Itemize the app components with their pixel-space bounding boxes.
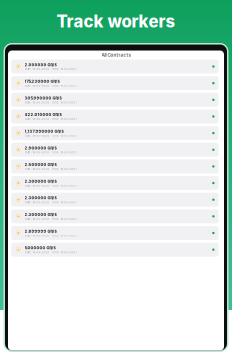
staticText: Track workers	[56, 11, 175, 32]
staticText: Start: 18-05-2020 End: 19-05-2021	[25, 201, 77, 204]
button[interactable]: 422.010000 Gh/s	[11, 109, 219, 123]
staticText: 2.900000 Gh/s	[25, 145, 57, 150]
staticText: Start: 18-05-2020 End: 19-05-2021	[25, 101, 77, 104]
staticText: Start: 18-05-2020 End: 19-05-2021	[25, 251, 77, 254]
staticText: Start: 18-05-2020 End: 19-05-2021	[25, 117, 77, 121]
staticText: 305.990000 Gh/s	[25, 96, 62, 100]
staticText: 5.000000 Gh/s	[25, 245, 56, 250]
staticText: Start: 18-05-2020 End: 19-05-2021	[25, 217, 77, 221]
staticText: 2.999999 Gh/s	[25, 62, 57, 67]
staticText: Start: 18-05-2020 End: 19-05-2021	[25, 184, 77, 187]
staticText: Start: 18-05-2020 End: 19-05-2021	[25, 84, 77, 87]
staticText: 2.300000 Gh/s	[25, 212, 57, 217]
staticText: All Contracts	[101, 52, 130, 58]
button[interactable]: 2.300000 Gh/s	[11, 209, 219, 223]
button[interactable]: 2.500000 Gh/s	[11, 159, 219, 173]
button[interactable]: 305.990000 Gh/s	[11, 93, 219, 107]
button[interactable]: 2.899999 Gh/s	[11, 226, 219, 240]
button[interactable]: 175.230000 Gh/s	[11, 76, 219, 90]
staticText: 2.300000 Gh/s	[25, 195, 57, 200]
staticText: 2.500000 Gh/s	[25, 162, 57, 167]
button[interactable]: 2.900000 Gh/s	[11, 143, 219, 157]
button[interactable]: 2.300000 Gh/s	[11, 176, 219, 190]
staticText: 1,137.990000 Gh/s	[25, 129, 64, 134]
staticText: Start: 18-05-2020 End: 19-05-2021	[25, 134, 77, 137]
staticText: 175.230000 Gh/s	[25, 79, 60, 84]
button[interactable]: 2.999999 Gh/s	[11, 59, 219, 73]
staticText: Start: 18-05-2020 End: 19-05-2021	[25, 67, 77, 71]
button[interactable]: 1,137.990000 Gh/s	[11, 126, 219, 140]
staticText: 422.010000 Gh/s	[25, 112, 62, 117]
staticText: Start: 18-05-2020 End: 19-05-2021	[25, 234, 77, 237]
staticText: 2.300000 Gh/s	[25, 179, 57, 184]
button[interactable]: 5.000000 Gh/s	[11, 243, 219, 257]
staticText: Start: 18-05-2020 End: 19-05-2021	[25, 151, 77, 154]
button[interactable]: 2.300000 Gh/s	[11, 193, 219, 207]
staticText: Start: 18-05-2020 End: 19-05-2021	[25, 167, 77, 171]
staticText: 2.899999 Gh/s	[25, 229, 57, 234]
